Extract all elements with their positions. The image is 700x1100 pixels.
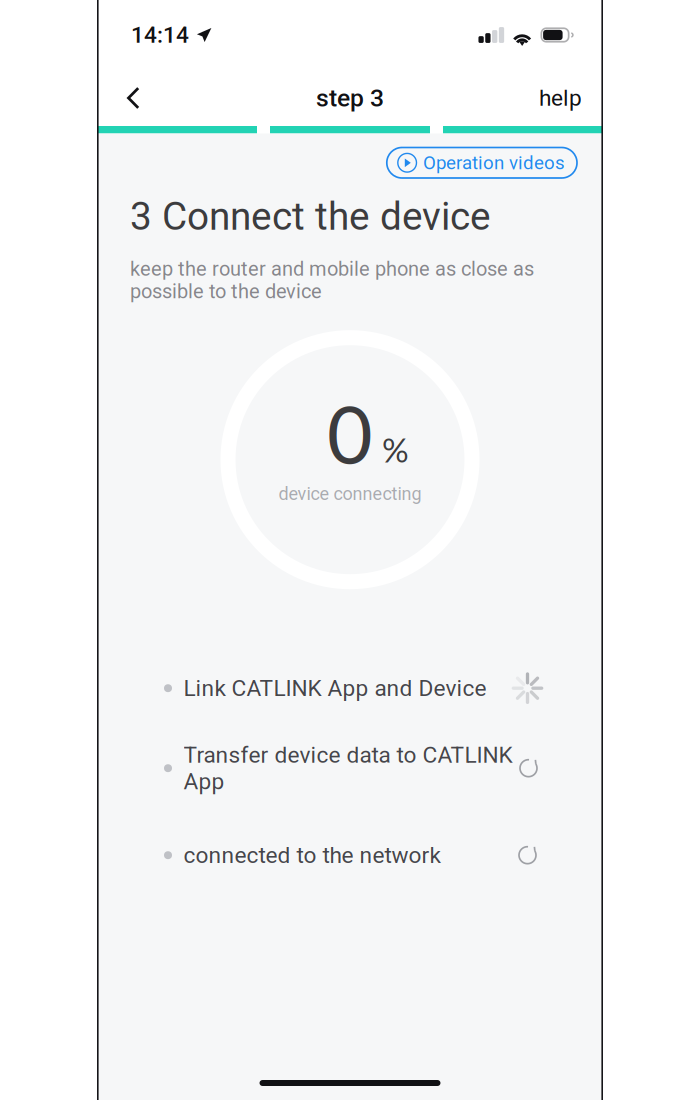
button[interactable]: help (539, 75, 582, 121)
staticText: step 3 (316, 83, 384, 112)
staticText: 3 Connect the device (130, 194, 491, 239)
staticText: Operation videos (423, 152, 565, 174)
staticText: keep the router and mobile phone as clos… (130, 257, 534, 303)
staticText: 0 (327, 386, 373, 481)
staticText: % (382, 430, 409, 470)
staticText: device connecting (278, 483, 421, 504)
staticText: Link CATLINK App and Device (183, 675, 486, 701)
staticText: Transfer device data to CATLINK App (183, 742, 512, 795)
staticText: connected to the network (183, 842, 440, 868)
button[interactable]: Operation videos (387, 147, 577, 178)
staticText: help (539, 85, 582, 111)
staticText: 14:14 (131, 22, 189, 48)
button[interactable]: Back (127, 75, 173, 121)
